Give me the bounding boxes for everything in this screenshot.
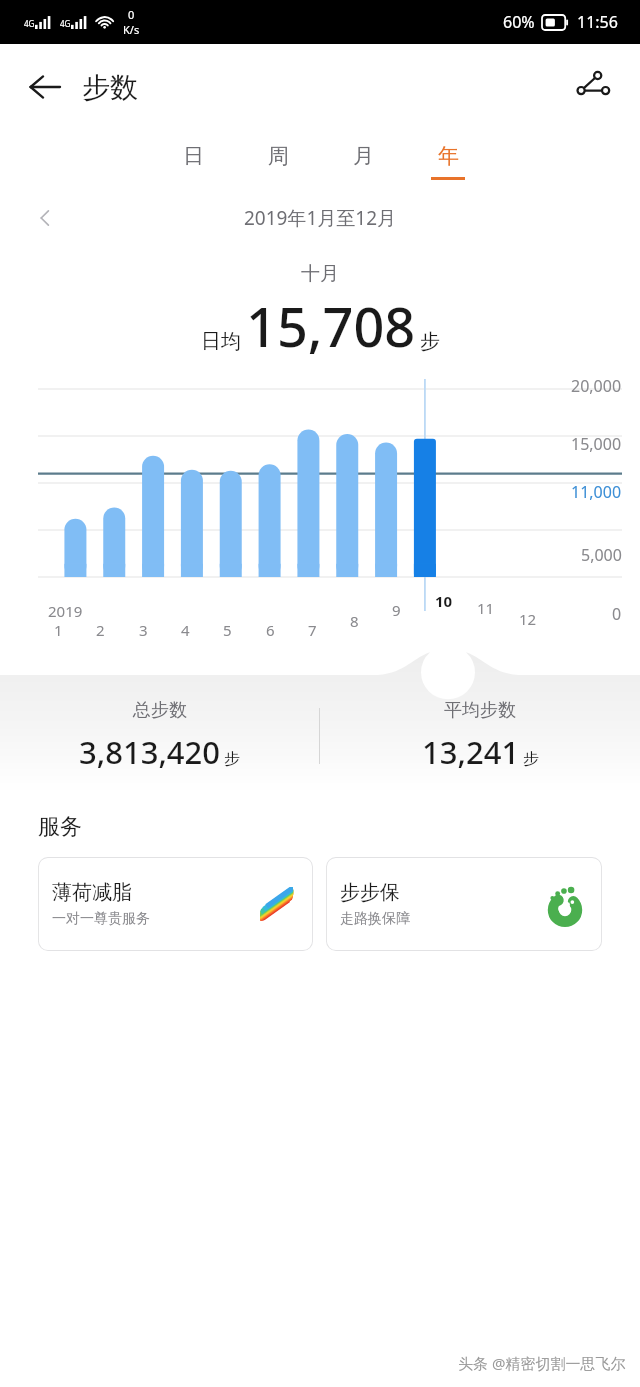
staticText: 0 <box>128 7 135 22</box>
staticText: 11:56 <box>577 11 618 33</box>
staticText: 薄荷减脂 <box>52 880 132 905</box>
button[interactable]: 总步数 <box>0 699 319 773</box>
button[interactable]: 平均步数 <box>320 699 640 773</box>
staticText: 0 <box>612 603 622 625</box>
staticText: 11 <box>477 598 495 618</box>
button[interactable]: 年 <box>405 130 490 192</box>
staticText: 3 <box>139 620 148 640</box>
staticText: 9 <box>392 600 401 620</box>
button[interactable]: 周 <box>235 130 320 192</box>
staticText: 12 <box>519 609 537 629</box>
button[interactable]: 薄荷减脂 <box>38 857 313 951</box>
staticText: 周 <box>268 143 289 169</box>
staticText: 2 <box>96 620 105 640</box>
button[interactable]: 步步保 <box>326 857 602 951</box>
staticText: 10 <box>435 591 453 611</box>
staticText: 20,000 <box>571 375 622 397</box>
button[interactable]: 日 <box>150 130 235 192</box>
staticText: 8 <box>350 611 359 631</box>
staticText: 年 <box>438 143 459 169</box>
button[interactable]: Previous year <box>24 196 68 240</box>
staticText: K/s <box>123 22 140 37</box>
staticText: 6 <box>266 620 275 640</box>
staticText: 5 <box>223 620 232 640</box>
staticText: 走路换保障 <box>340 910 410 928</box>
staticText: 日均 <box>201 329 241 354</box>
button[interactable]: Back <box>16 58 74 116</box>
button[interactable]: 月 <box>320 130 405 192</box>
staticText: 60% <box>503 11 535 33</box>
staticText: 头条 @精密切割一思飞尔 <box>458 1353 626 1373</box>
staticText: 4 <box>181 620 190 640</box>
staticText: 平均步数 <box>444 699 516 722</box>
staticText: 月 <box>353 143 374 169</box>
staticText: 总步数 <box>133 699 187 722</box>
staticText: 15,708 <box>246 289 416 363</box>
button[interactable]: Share <box>564 58 622 116</box>
staticText: 2019年1月至12月 <box>244 205 397 231</box>
staticText: 十月 <box>301 262 339 286</box>
staticText: 1 <box>54 620 63 640</box>
staticText: 服务 <box>38 813 82 841</box>
staticText: 4G <box>24 18 35 29</box>
staticText: 13,241 <box>422 731 520 773</box>
staticText: 步 <box>523 749 539 769</box>
staticText: 一对一尊贵服务 <box>52 910 150 928</box>
staticText: 步 <box>224 749 240 769</box>
staticText: 2019 <box>48 601 83 621</box>
staticText: 日 <box>183 143 204 169</box>
staticText: 5,000 <box>581 544 622 566</box>
staticText: 11,000 <box>571 481 622 503</box>
staticText: 步 <box>420 329 440 354</box>
staticText: 7 <box>308 620 317 640</box>
staticText: 15,000 <box>571 433 622 455</box>
staticText: 步步保 <box>340 880 400 905</box>
staticText: 3,813,420 <box>79 731 221 773</box>
staticText: 4G <box>60 18 71 29</box>
staticText: 步数 <box>82 70 138 105</box>
